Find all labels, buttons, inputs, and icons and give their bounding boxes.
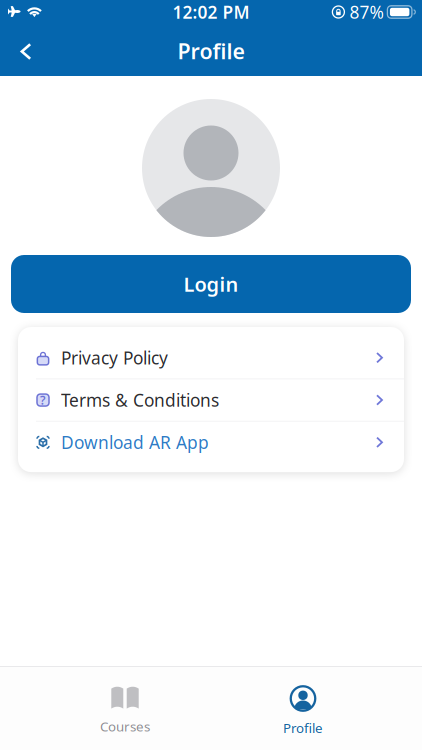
button[interactable]: Back bbox=[4, 29, 48, 73]
button[interactable]: ? bbox=[18, 379, 404, 421]
button[interactable]: Courses bbox=[62, 667, 188, 750]
button[interactable]: Profile bbox=[240, 667, 366, 750]
staticText: Profile bbox=[177, 37, 244, 65]
button[interactable]: Login bbox=[0, 255, 422, 313]
staticText: Login bbox=[183, 271, 238, 297]
staticText: 12:02 PM bbox=[172, 0, 249, 23]
staticText: Terms & Conditions bbox=[61, 388, 219, 411]
button[interactable]: Download AR App bbox=[18, 422, 404, 463]
staticText: Privacy Policy bbox=[61, 346, 168, 369]
staticText: Courses bbox=[100, 717, 150, 735]
staticText: ? bbox=[40, 392, 46, 408]
staticText: Profile bbox=[283, 719, 323, 737]
button[interactable]: Privacy Policy bbox=[18, 337, 404, 378]
staticText: Download AR App bbox=[61, 431, 209, 454]
staticText: 87% bbox=[349, 0, 383, 23]
